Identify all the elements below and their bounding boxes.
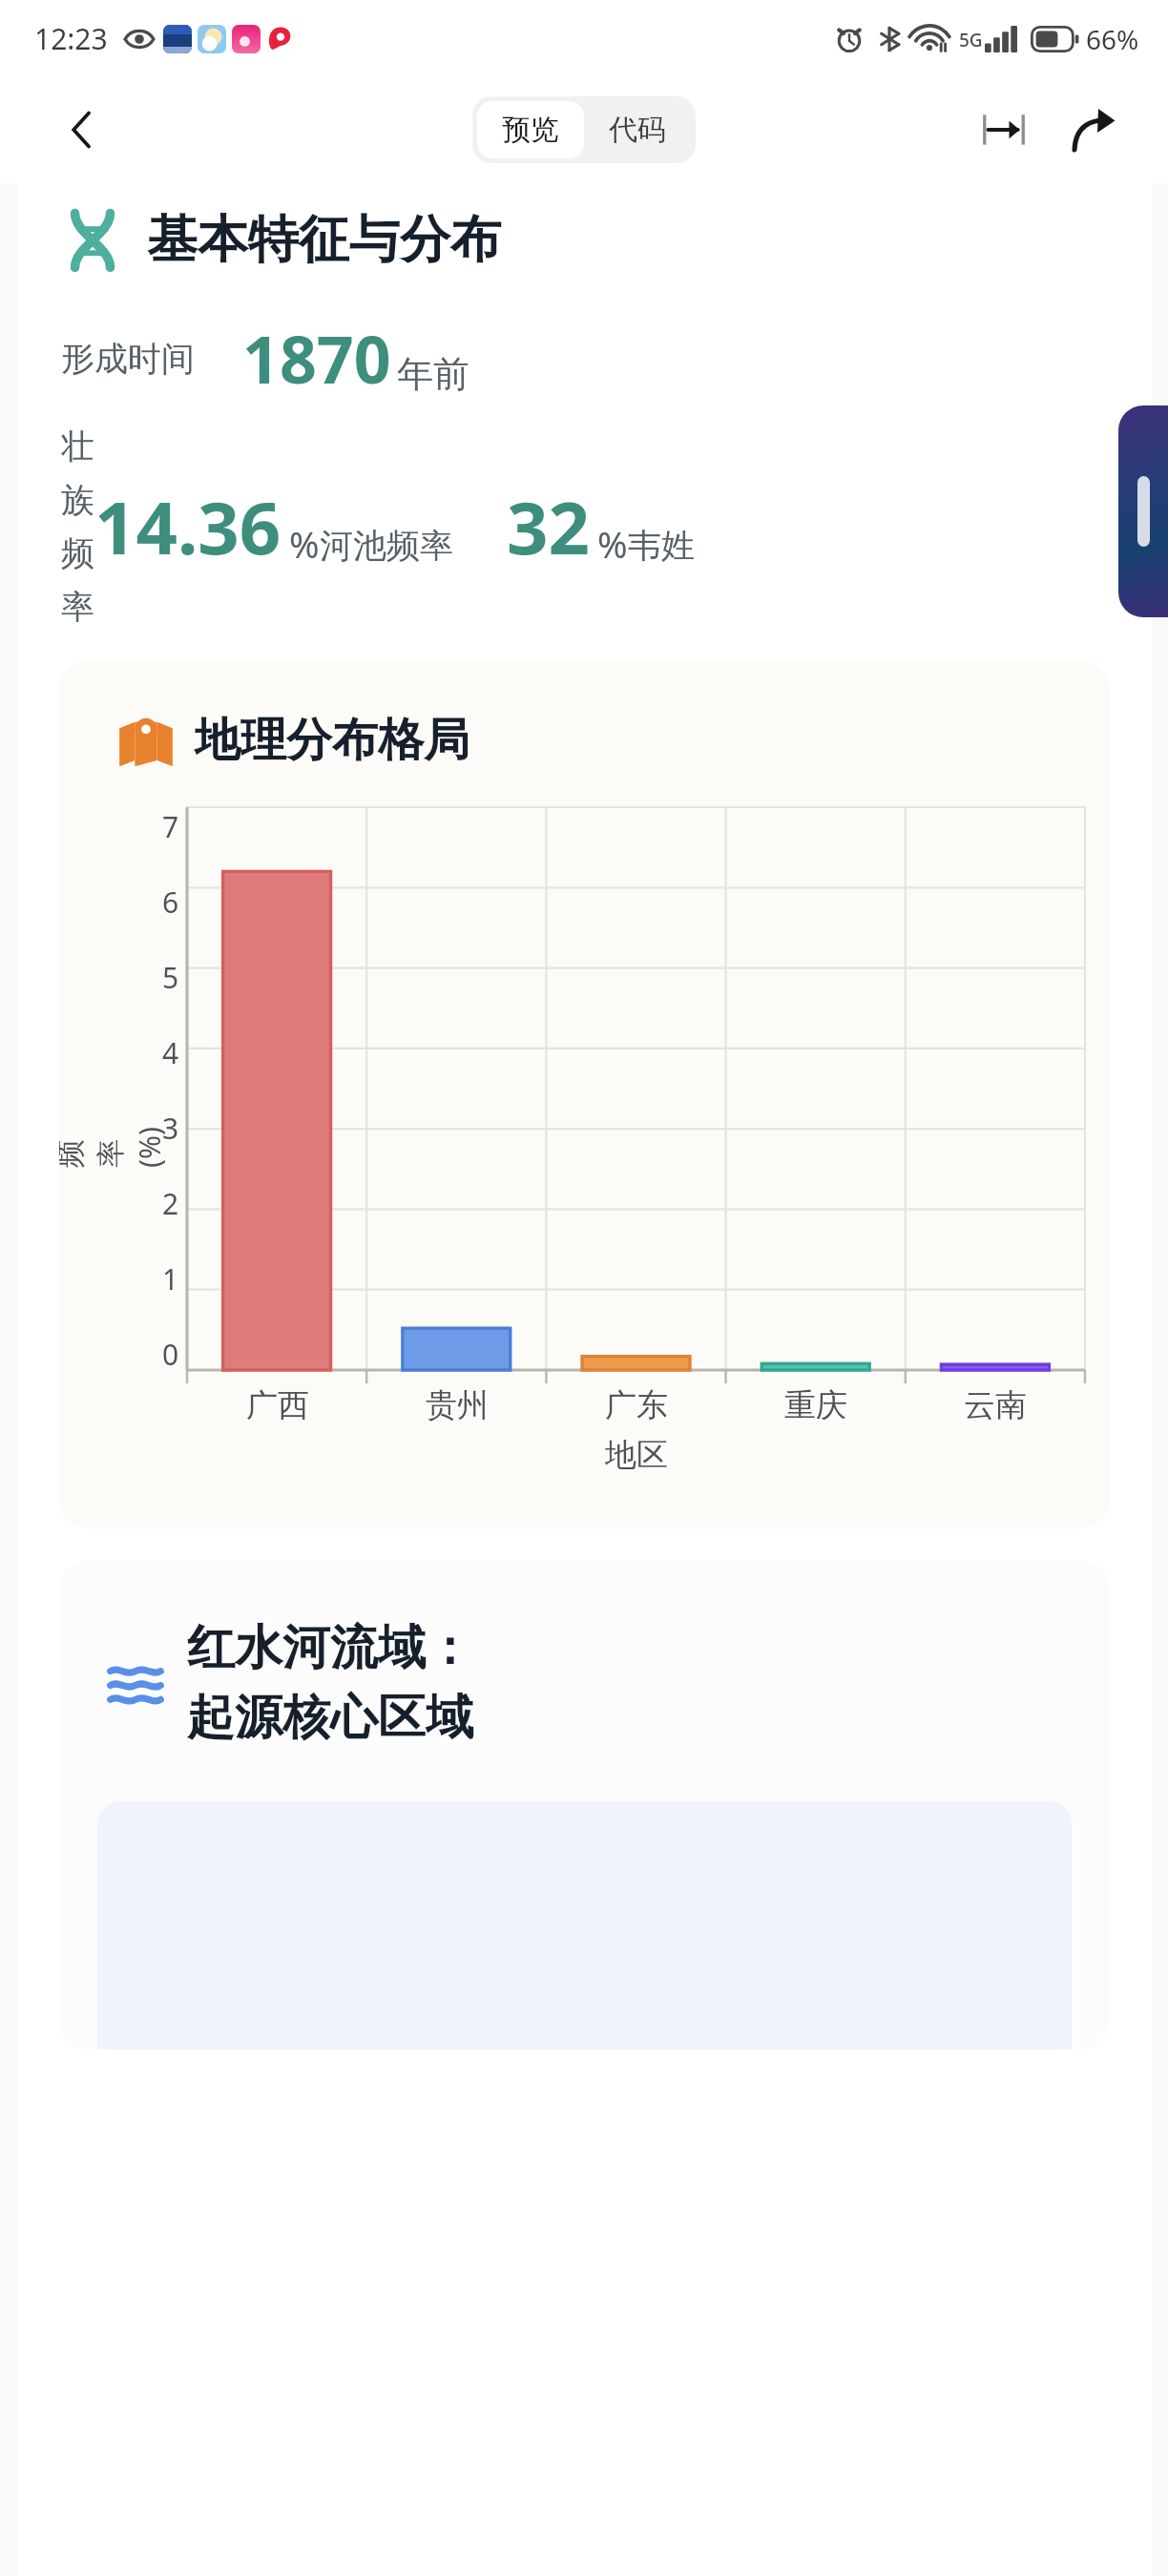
staticText: 率 (61, 586, 94, 628)
staticText: 河池频率 (320, 525, 453, 567)
staticText: 3 (162, 1109, 179, 1148)
staticText: 贵州 (426, 1385, 489, 1425)
button[interactable]: 代码 (584, 101, 691, 158)
staticText: 7 (162, 807, 179, 846)
staticText: 族 (61, 479, 94, 521)
staticText: 广西 (246, 1385, 309, 1425)
staticText: 12:23 (34, 19, 108, 58)
staticText: 地理分布格局 (195, 712, 469, 769)
staticText: 基本特征与分布 (147, 208, 501, 272)
staticText: 频 (61, 532, 94, 574)
button[interactable]: 红水河流域： (59, 1561, 1110, 2049)
button[interactable]: Side panel handle (1118, 405, 1168, 617)
staticText: 66% (1086, 21, 1139, 57)
staticText: 5 (162, 958, 179, 997)
staticText: 广东 (605, 1385, 668, 1425)
staticText: 地区 (605, 1435, 668, 1475)
staticText: 频率 (%) (59, 1114, 169, 1168)
staticText: % (289, 519, 320, 569)
staticText: 年前 (397, 351, 469, 397)
staticText: 预览 (502, 112, 559, 148)
staticText: 14.36 (94, 477, 282, 576)
staticText: 红水河流域： (187, 1618, 473, 1678)
staticText: 1 (162, 1259, 179, 1298)
staticText: 壮 (61, 426, 94, 467)
button[interactable]: Share (1057, 93, 1130, 166)
staticText: 32 (507, 477, 590, 576)
staticText: 韦姓 (628, 525, 695, 567)
staticText: 6 (162, 883, 179, 922)
staticText: 形成时间 (61, 338, 195, 380)
button[interactable]: Fit width (968, 93, 1040, 166)
staticText: 0 (162, 1335, 179, 1374)
button[interactable]: 预览 (477, 101, 584, 158)
button[interactable]: 地理分布格局 (59, 660, 1110, 1528)
staticText: 2 (162, 1184, 179, 1223)
staticText: 1870 (242, 314, 391, 403)
staticText: 重庆 (784, 1385, 847, 1425)
staticText: 4 (162, 1033, 179, 1072)
staticText: 5G (959, 28, 983, 52)
button[interactable]: Back (46, 93, 118, 166)
staticText: 起源核心区域 (187, 1688, 473, 1748)
staticText: 代码 (609, 112, 666, 148)
staticText: % (597, 519, 628, 569)
staticText: 云南 (964, 1385, 1027, 1425)
